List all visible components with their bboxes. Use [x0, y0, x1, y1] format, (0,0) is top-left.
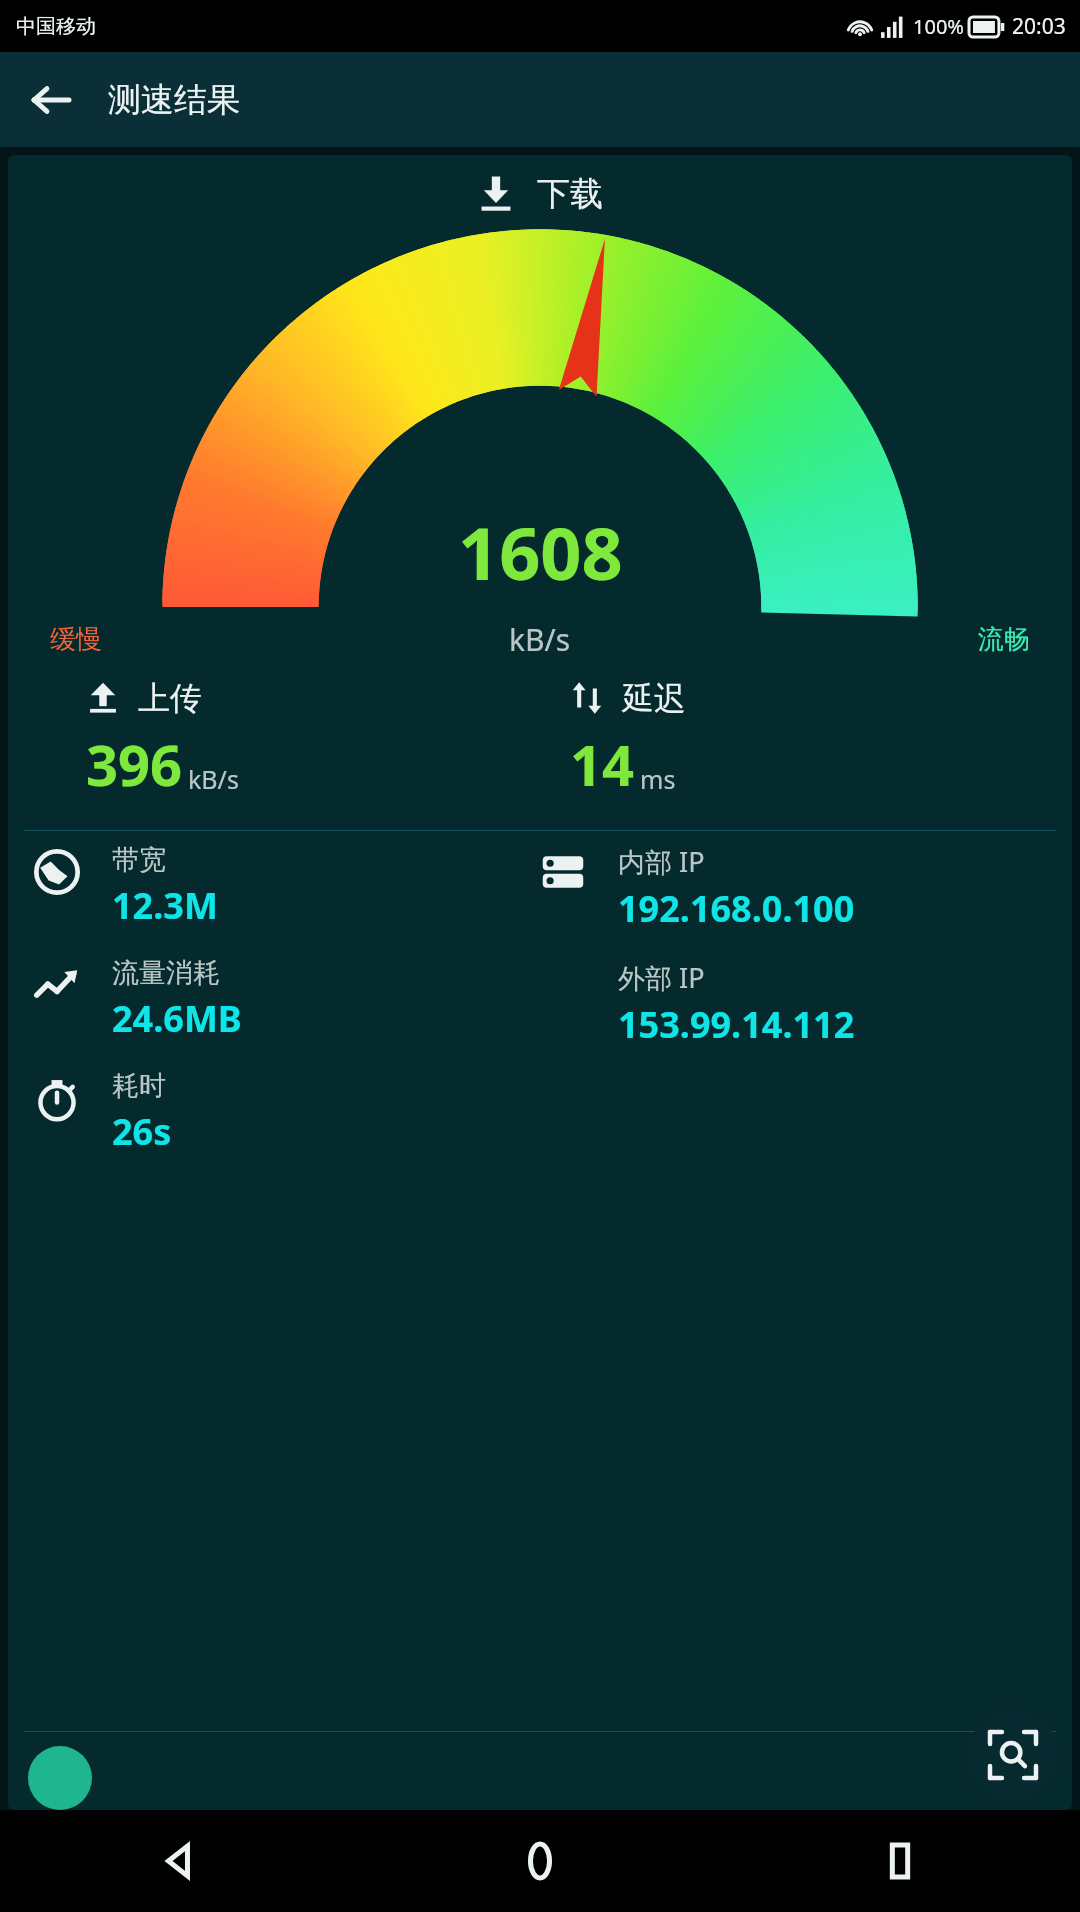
staticText: 1608: [458, 503, 623, 601]
button[interactable]: Scan: [968, 1710, 1058, 1800]
staticText: kB/s: [188, 762, 239, 796]
button[interactable]: Back: [22, 72, 78, 128]
button[interactable]: Home: [360, 1810, 720, 1912]
staticText: 153.99.14.112: [618, 1000, 855, 1049]
staticText: 内部 IP: [618, 843, 705, 880]
staticText: 流畅: [978, 623, 1030, 656]
button[interactable]: Back: [0, 1810, 360, 1912]
staticText: 20:03: [1012, 12, 1066, 41]
staticText: 24.6MB: [112, 994, 242, 1043]
staticText: 中国移动: [16, 14, 96, 39]
staticText: kB/s: [509, 619, 571, 660]
staticText: 100%: [913, 13, 964, 40]
staticText: ms: [640, 762, 676, 796]
button[interactable]: Recents: [720, 1810, 1080, 1912]
staticText: 耗时: [112, 1069, 166, 1103]
staticText: 外部 IP: [618, 959, 705, 996]
staticText: 下载: [537, 173, 603, 215]
staticText: 12.3M: [112, 881, 218, 930]
staticText: 缓慢: [50, 623, 102, 656]
staticText: 流量消耗: [112, 956, 220, 990]
staticText: 带宽: [112, 843, 166, 877]
staticText: 192.168.0.100: [618, 884, 855, 933]
staticText: 26s: [112, 1107, 172, 1156]
staticText: 延迟: [622, 678, 686, 718]
staticText: 396: [86, 726, 183, 802]
staticText: 上传: [138, 678, 202, 718]
staticText: 14: [570, 726, 635, 802]
staticText: 测速结果: [108, 79, 240, 121]
